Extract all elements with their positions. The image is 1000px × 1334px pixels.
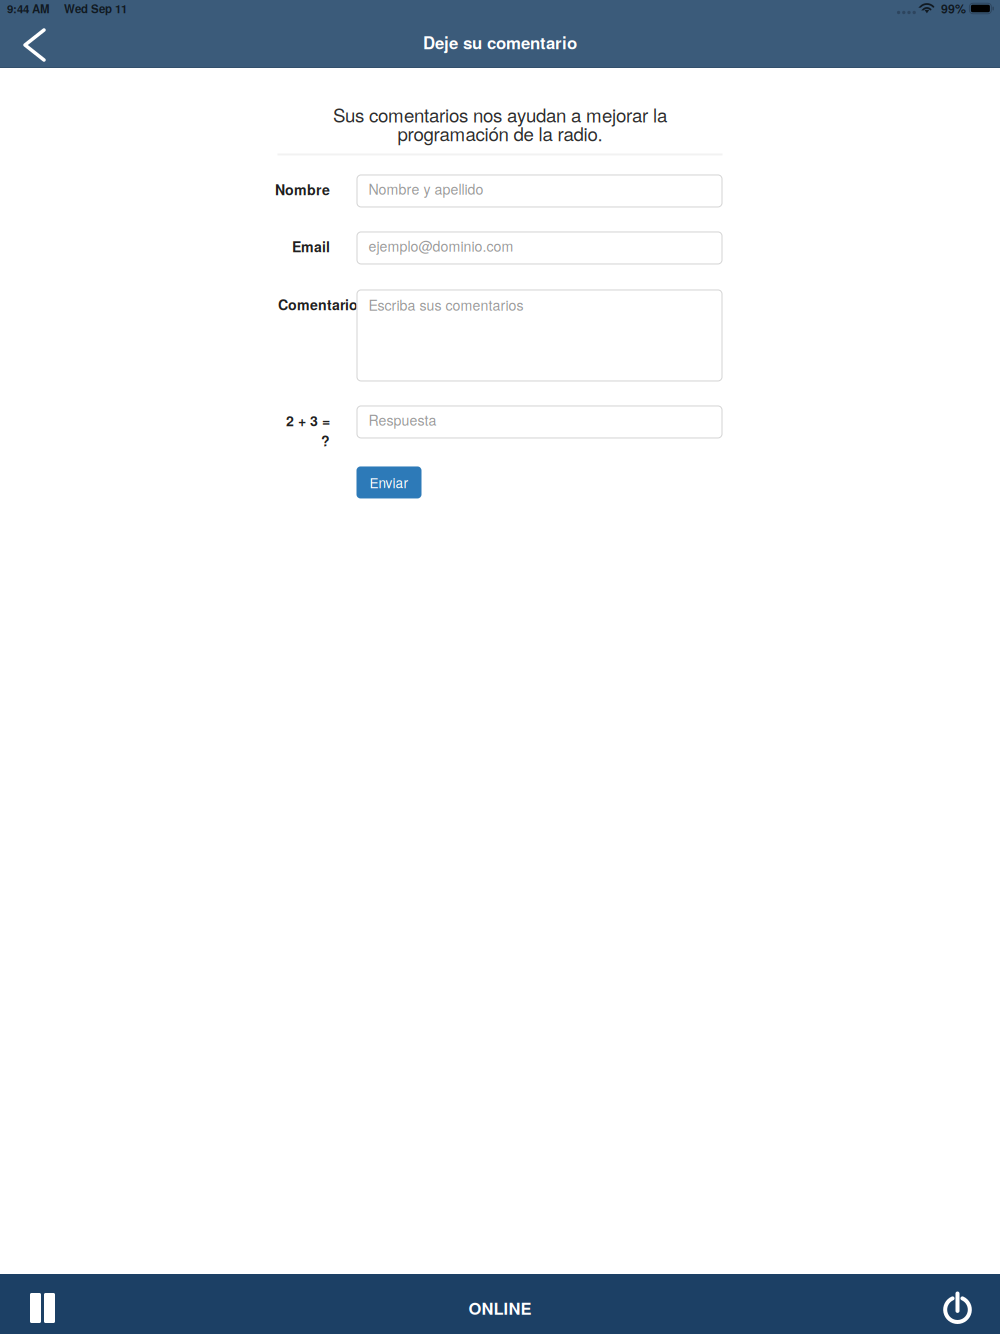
staticText: ONLINE (468, 1296, 531, 1320)
button[interactable]: Escriba sus comentarios (356, 289, 722, 381)
staticText: programación de la radio. (397, 120, 602, 146)
button[interactable]: Nombre y apellido (356, 174, 722, 207)
button[interactable]: Power (915, 1270, 1000, 1334)
staticText: Enviar (369, 473, 408, 492)
staticText: Email (291, 236, 329, 257)
button[interactable]: Enviar (356, 466, 421, 498)
staticText: Respuesta (368, 409, 436, 430)
button[interactable]: Respuesta (356, 405, 722, 438)
staticText: Escriba sus comentarios (368, 294, 523, 315)
staticText: Deje su comentario (423, 30, 577, 55)
staticText: ejemplo@dominio.com (368, 235, 513, 256)
button[interactable]: Back (0, 22, 62, 68)
button[interactable]: ejemplo@dominio.com (356, 231, 722, 264)
staticText: Nombre (274, 179, 329, 200)
button[interactable]: Pause (0, 1270, 85, 1334)
staticText: Wed Sep 11 (64, 0, 127, 17)
staticText: 9:44 AM (7, 0, 50, 17)
staticText: Sus comentarios nos ayudan a mejorar la (333, 101, 667, 128)
staticText: 99% (941, 0, 966, 17)
staticText: Nombre y apellido (368, 178, 483, 199)
staticText: 2 + 3 = ? (285, 410, 329, 451)
staticText: Comentarios (277, 294, 365, 315)
